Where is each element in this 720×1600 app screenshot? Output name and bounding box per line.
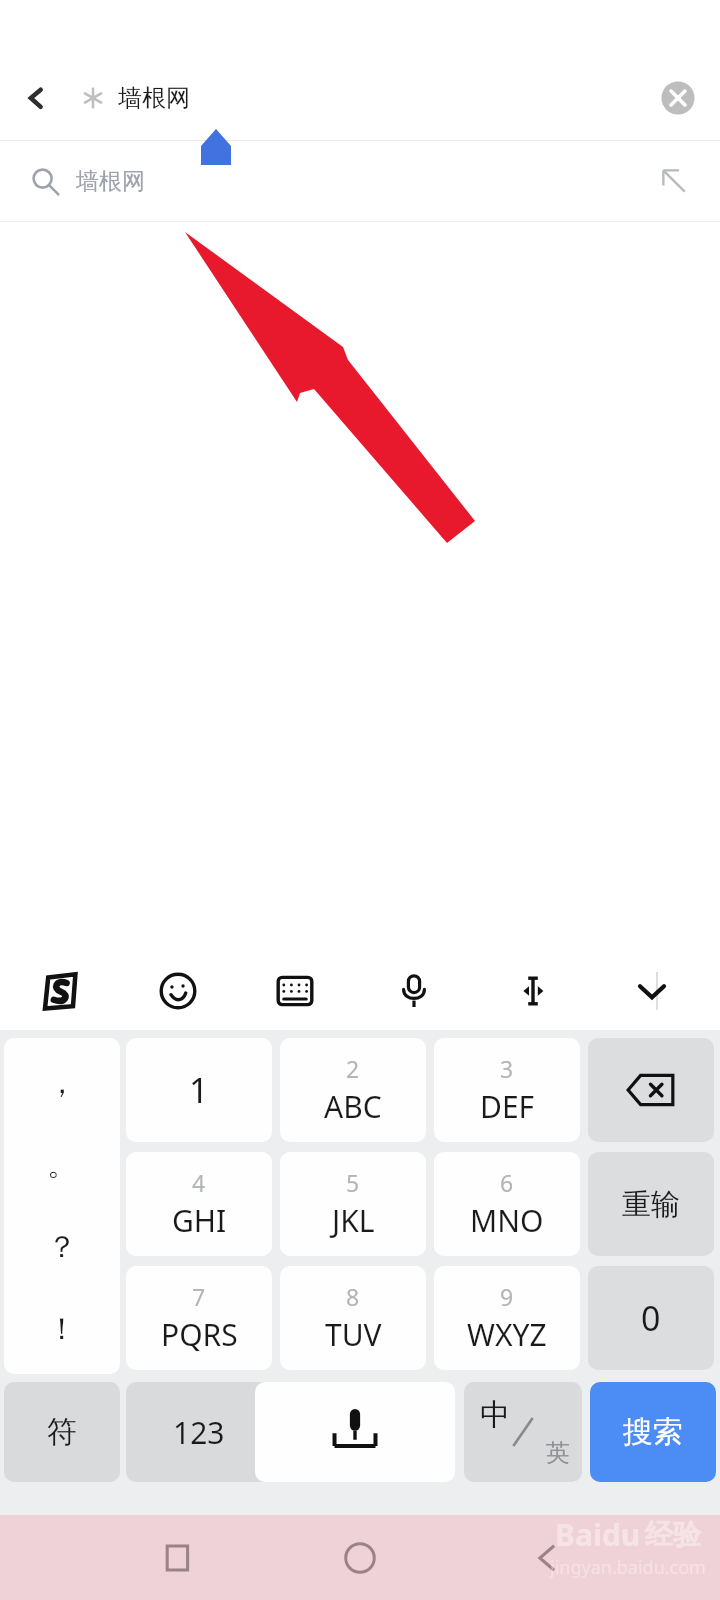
button[interactable]: Hide keyboard — [620, 959, 684, 1023]
button[interactable]: 1 — [126, 1038, 272, 1142]
button[interactable]: 6 MNO — [434, 1152, 580, 1256]
staticText: ABC — [324, 1086, 382, 1127]
staticText: 墙根网 — [118, 83, 190, 113]
staticText: 7 — [192, 1281, 206, 1312]
button[interactable]: Clear — [652, 72, 704, 124]
staticText: 4 — [192, 1167, 206, 1198]
button[interactable]: 搜索 — [590, 1382, 716, 1482]
button[interactable]: 3 DEF — [434, 1038, 580, 1142]
staticText: 。 — [47, 1146, 77, 1184]
button[interactable]: 2 ABC — [280, 1038, 426, 1142]
staticText: 9 — [500, 1281, 514, 1312]
staticText: 1 — [189, 1067, 209, 1113]
staticText: ， — [47, 1064, 77, 1102]
button[interactable]: Back — [8, 70, 64, 126]
staticText: 英 — [546, 1438, 570, 1468]
button[interactable]: Keyboard layout — [263, 959, 327, 1023]
button[interactable]: 墙根网 — [0, 141, 720, 221]
staticText: 123 — [173, 1412, 225, 1453]
button[interactable]: Voice input — [382, 959, 446, 1023]
button[interactable]: 重输 — [588, 1152, 714, 1256]
staticText: MNO — [470, 1200, 544, 1241]
button[interactable]: Home — [328, 1526, 392, 1590]
staticText: 中 — [480, 1396, 510, 1434]
button[interactable]: Emoji — [146, 959, 210, 1023]
button[interactable]: 0 — [588, 1266, 714, 1370]
staticText: WXYZ — [467, 1314, 547, 1355]
staticText: ？ — [47, 1228, 77, 1266]
staticText: JKL — [332, 1200, 375, 1241]
button[interactable]: Punctuation — [4, 1038, 120, 1374]
staticText: 符 — [47, 1413, 77, 1451]
staticText: TUV — [325, 1314, 382, 1355]
button[interactable]: Move cursor — [501, 959, 565, 1023]
button[interactable]: 符 — [4, 1382, 120, 1482]
button[interactable]: Sogou input — [29, 959, 93, 1023]
button[interactable]: 123 — [126, 1382, 272, 1482]
button[interactable]: Backspace — [588, 1038, 714, 1142]
button[interactable]: Space / voice — [255, 1382, 455, 1482]
staticText: 搜索 — [623, 1413, 683, 1451]
button[interactable]: 中/英 — [464, 1382, 582, 1482]
button[interactable]: Back — [516, 1526, 580, 1590]
button[interactable]: Recents — [146, 1526, 210, 1590]
staticText: 重输 — [622, 1186, 680, 1223]
staticText: 经验 — [645, 1517, 701, 1552]
staticText: Baidu — [555, 1514, 641, 1555]
staticText: 6 — [500, 1167, 514, 1198]
button[interactable]: 8 TUV — [280, 1266, 426, 1370]
staticText: 2 — [346, 1053, 360, 1084]
staticText: ！ — [47, 1310, 77, 1348]
button[interactable]: 9 WXYZ — [434, 1266, 580, 1370]
button[interactable]: 4 GHI — [126, 1152, 272, 1256]
staticText: 0 — [641, 1295, 661, 1341]
staticText: DEF — [480, 1086, 535, 1127]
staticText: 3 — [500, 1053, 514, 1084]
button[interactable]: 7 PQRS — [126, 1266, 272, 1370]
staticText: 墙根网 — [76, 167, 145, 196]
staticText: 5 — [346, 1167, 360, 1198]
staticText: jingyan.baidu.com — [550, 1555, 706, 1580]
staticText: PQRS — [161, 1314, 238, 1355]
button[interactable]: Fill query — [650, 157, 698, 205]
staticText: GHI — [172, 1200, 227, 1241]
button[interactable]: 5 JKL — [280, 1152, 426, 1256]
staticText: 8 — [346, 1281, 360, 1312]
